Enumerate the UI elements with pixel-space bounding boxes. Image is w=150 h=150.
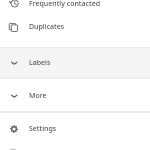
other: Expand <box>8 90 20 102</box>
staticText: Settings <box>29 124 57 134</box>
staticText: Duplicates <box>29 22 65 32</box>
other: Duplicates <box>8 21 20 33</box>
button[interactable]: Expand <box>0 49 150 77</box>
other: Settings <box>8 123 20 135</box>
staticText: Frequently contacted <box>29 0 101 9</box>
button[interactable]: Help and feedback <box>0 144 150 150</box>
staticText: More <box>29 91 47 101</box>
button[interactable]: Frequently contacted <box>0 0 150 19</box>
other: Frequently contacted <box>8 0 20 10</box>
button[interactable]: Expand <box>0 80 150 112</box>
staticText: Labels <box>29 58 51 68</box>
button[interactable]: Duplicates <box>0 11 150 43</box>
other: Expand <box>8 57 20 69</box>
button[interactable]: Settings <box>0 113 150 145</box>
